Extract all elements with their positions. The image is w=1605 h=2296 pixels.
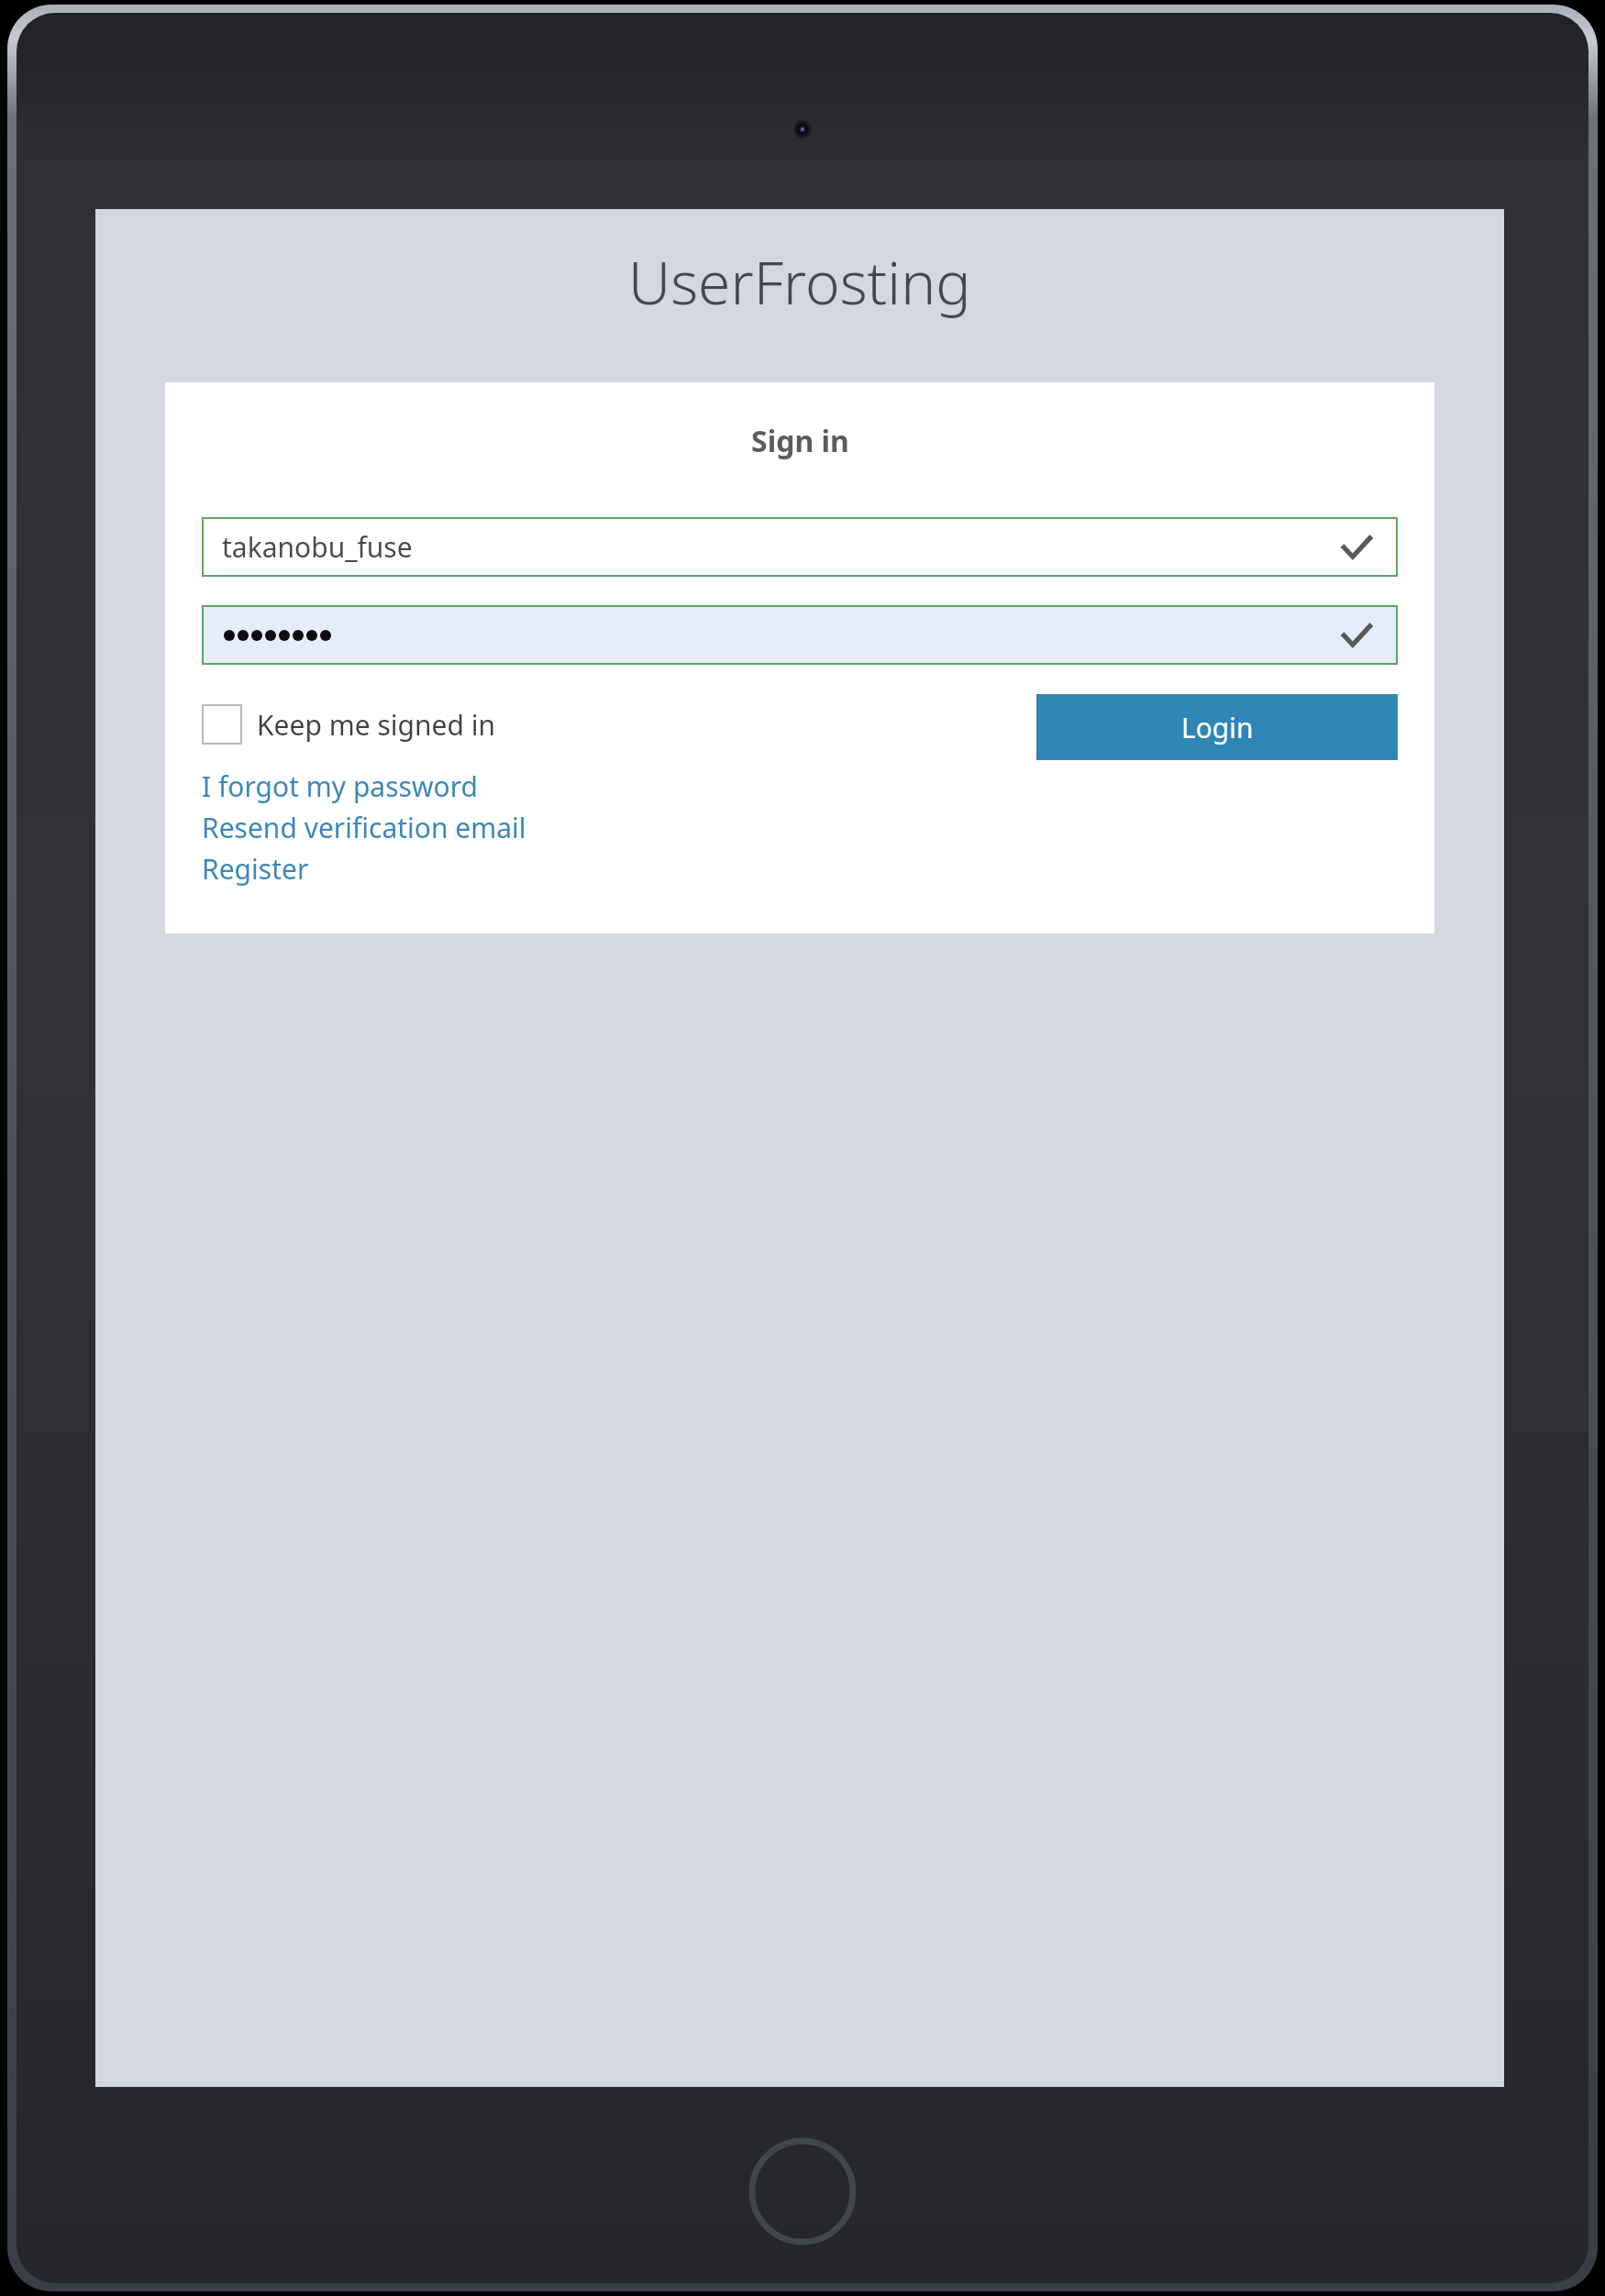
staticText: Keep me signed in: [257, 706, 495, 744]
staticText: Register: [202, 850, 309, 888]
button[interactable]: Home: [747, 2136, 858, 2246]
staticText: Login: [1181, 709, 1254, 746]
staticText: Resend verification email: [202, 809, 526, 846]
staticText: UserFrosting: [628, 242, 971, 322]
button[interactable]: Login: [1036, 694, 1398, 760]
button[interactable]: takanobu_fuse: [202, 517, 1398, 577]
staticText: I forgot my password: [202, 767, 478, 805]
staticText: takanobu_fuse: [222, 528, 413, 566]
button[interactable]: I forgot my password: [202, 766, 478, 807]
staticText: Sign in: [751, 421, 849, 461]
button[interactable]: Register: [202, 848, 309, 889]
button[interactable]: Keep me signed in: [202, 697, 495, 752]
button[interactable]: Resend verification email: [202, 807, 526, 848]
button[interactable]: [202, 605, 1398, 665]
